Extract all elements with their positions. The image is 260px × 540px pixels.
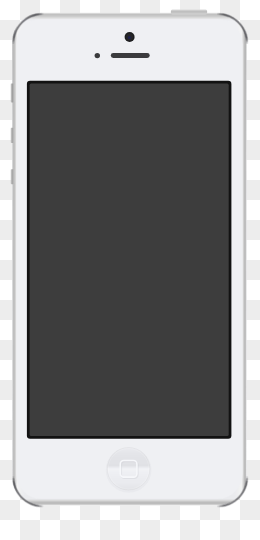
- button[interactable]: White smartphone illustration: [0, 0, 260, 540]
